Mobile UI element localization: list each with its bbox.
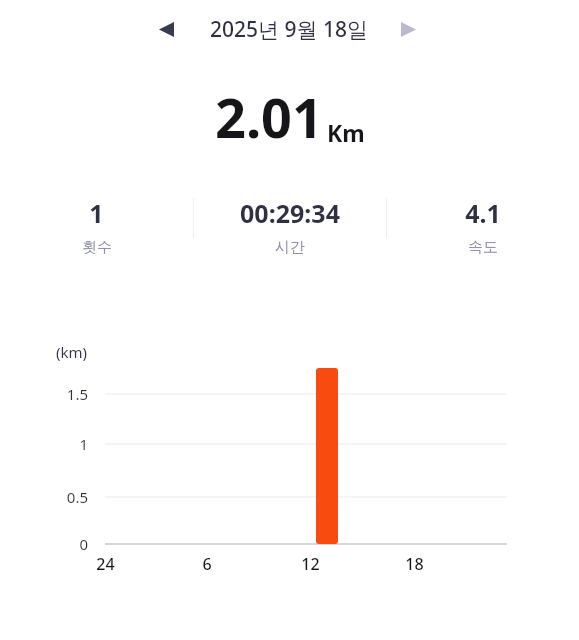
staticText: 2.01 (215, 80, 323, 154)
button[interactable]: 4.1 (387, 196, 579, 257)
staticText: 0 (79, 534, 88, 554)
staticText: 00:29:34 (240, 196, 340, 230)
button[interactable]: Next day (388, 9, 428, 49)
staticText: 24 (96, 553, 115, 575)
staticText: Km (327, 117, 365, 148)
staticText: 12 (301, 553, 320, 575)
staticText: 0.5 (66, 487, 88, 507)
staticText: (km) (56, 342, 88, 362)
staticText: 횟수 (82, 238, 112, 257)
staticText: 6 (202, 553, 212, 575)
button[interactable]: 1 (0, 196, 193, 257)
button[interactable]: 00:29:34 (194, 196, 386, 257)
staticText: 1 (89, 196, 104, 230)
staticText: 18 (405, 553, 424, 575)
staticText: 시간 (275, 238, 305, 257)
staticText: 1.5 (66, 384, 88, 404)
button[interactable]: Previous day (146, 9, 186, 49)
staticText: 속도 (468, 238, 498, 257)
staticText: 1 (79, 434, 88, 454)
staticText: 4.1 (465, 196, 501, 230)
staticText: 2025년 9월 18일 (210, 15, 369, 44)
